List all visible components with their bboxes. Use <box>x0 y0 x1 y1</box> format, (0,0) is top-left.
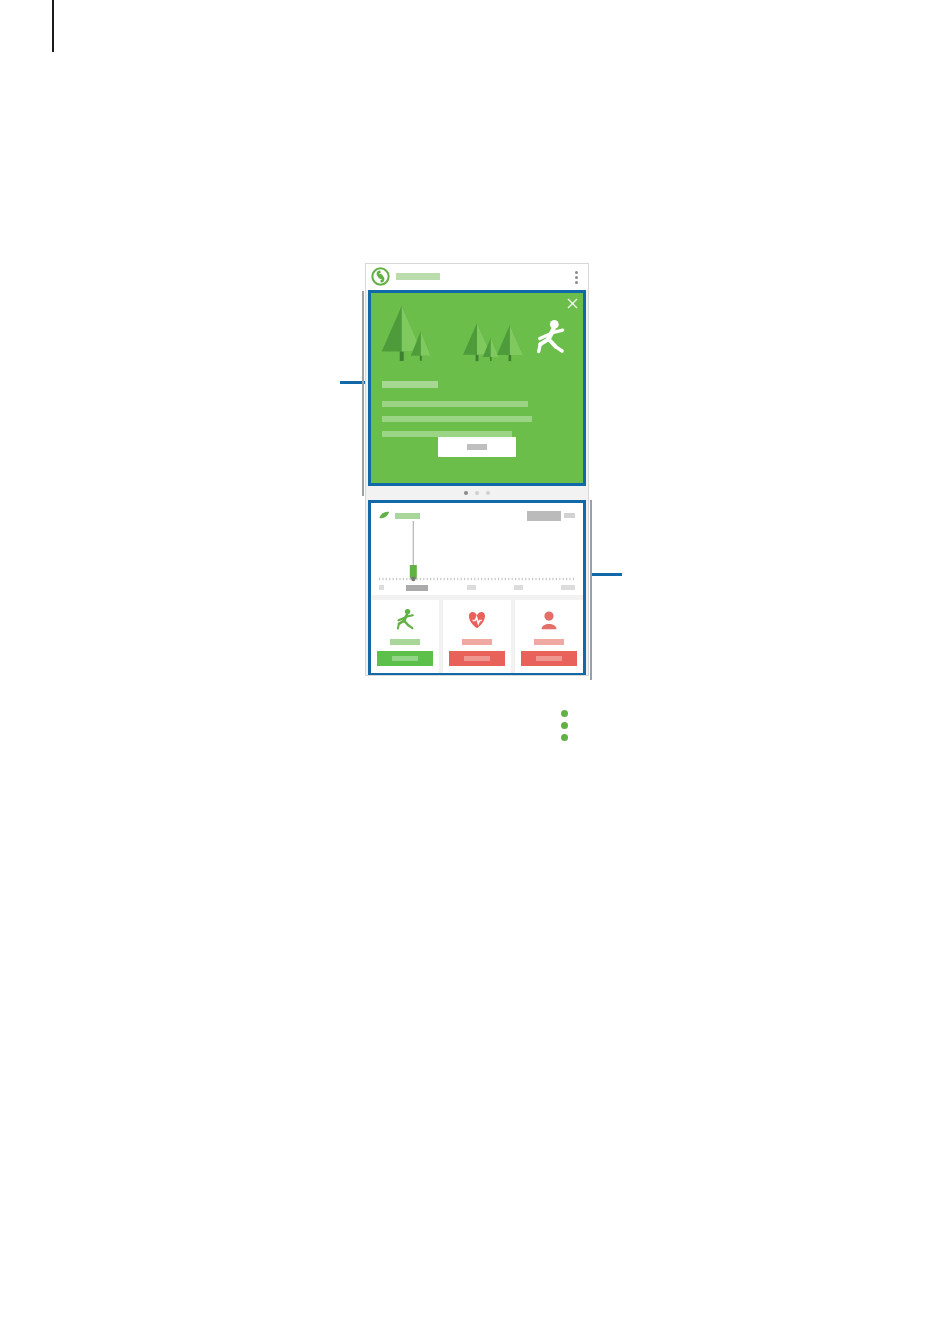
button[interactable] <box>443 600 511 673</box>
button[interactable]: More options <box>556 710 572 750</box>
button[interactable] <box>515 600 583 673</box>
button[interactable] <box>371 600 439 673</box>
button[interactable]: Close <box>568 299 577 308</box>
button[interactable] <box>521 651 577 666</box>
button[interactable] <box>377 651 433 666</box>
button[interactable]: More options <box>570 269 582 285</box>
button[interactable]: Close <box>371 293 583 483</box>
button[interactable] <box>449 651 505 666</box>
button[interactable] <box>371 503 583 595</box>
button[interactable] <box>438 437 516 457</box>
